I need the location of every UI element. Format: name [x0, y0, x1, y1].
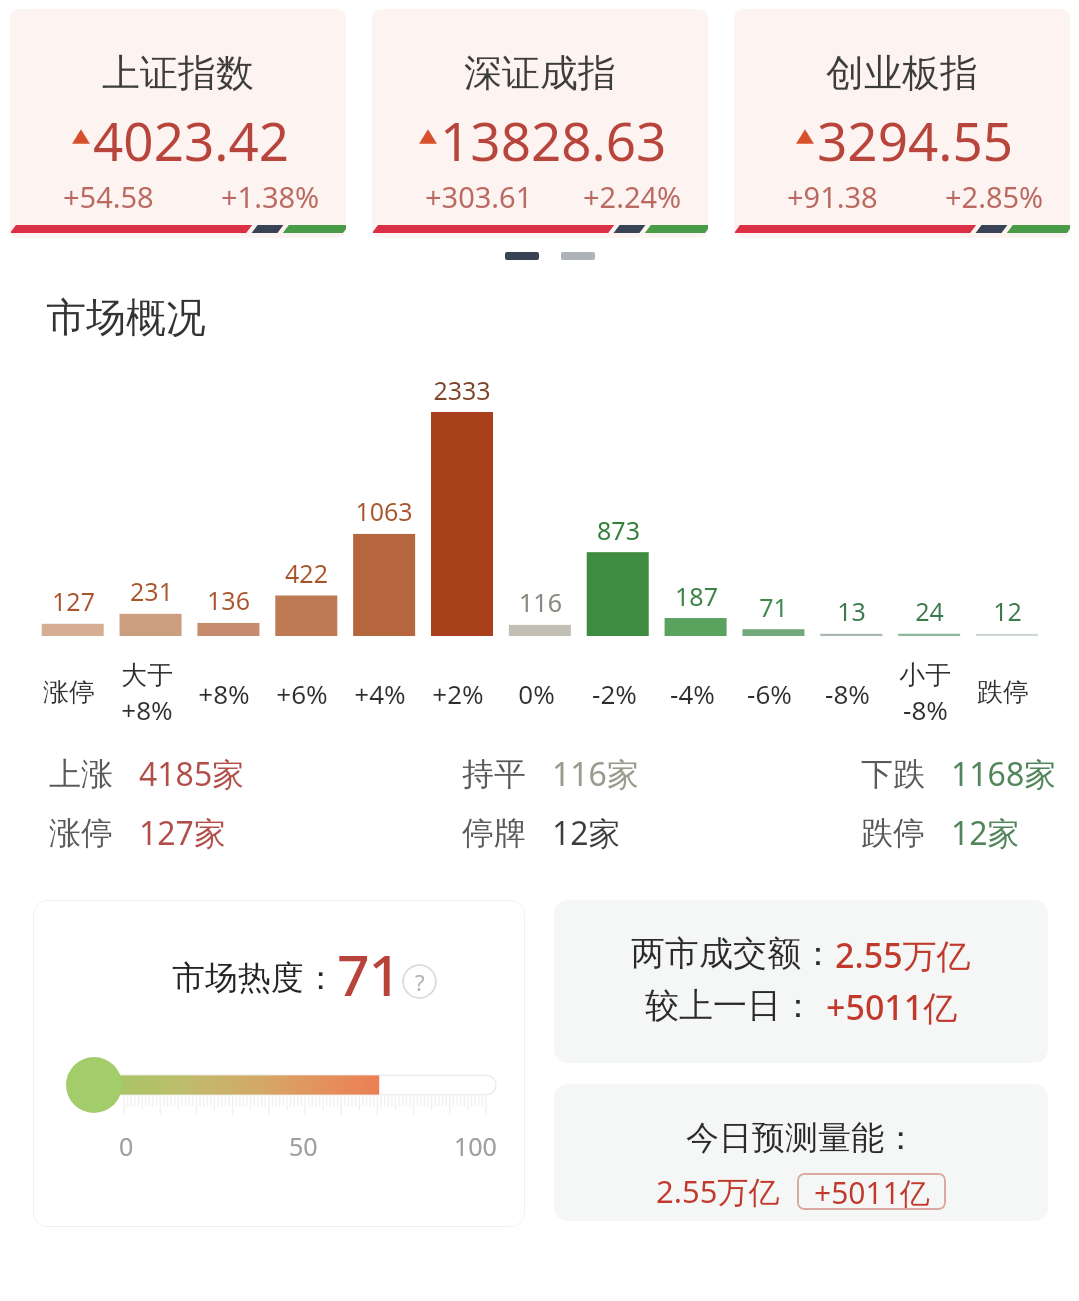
staticText: +2.24%: [583, 177, 682, 216]
staticText: 71: [759, 590, 788, 624]
staticText: 1168家: [951, 752, 1057, 796]
staticText: -2%: [592, 676, 637, 711]
staticText: 持平: [462, 754, 526, 794]
staticText: 深证成指: [464, 49, 616, 97]
button[interactable]: 下跌: [861, 752, 1057, 796]
staticText: 2.55万亿: [835, 932, 971, 978]
staticText: +303.61: [425, 177, 583, 216]
staticText: 231: [130, 574, 173, 608]
staticText: 0%: [518, 676, 555, 711]
staticText: 12家: [552, 811, 621, 855]
staticText: -6%: [747, 676, 792, 711]
button[interactable]: 跌停: [861, 811, 1020, 855]
staticText: 跌停: [977, 676, 1029, 709]
staticText: 两市成交额：: [631, 932, 835, 975]
button[interactable]: 深证成指: [372, 9, 708, 238]
staticText: 2333: [433, 373, 491, 407]
button[interactable]: 两市成交额：: [554, 900, 1048, 1063]
staticText: 3294.55: [817, 104, 1014, 176]
staticText: 0: [119, 1129, 134, 1163]
button[interactable]: 上证指数: [10, 9, 346, 238]
staticText: 市场概况: [46, 292, 206, 342]
button[interactable]: 今日预测量能：: [554, 1084, 1048, 1221]
staticText: +54.58: [63, 177, 221, 216]
staticText: +6%: [276, 676, 328, 711]
staticText: 2.55万亿: [656, 1170, 780, 1212]
staticText: 涨停: [43, 676, 95, 709]
staticText: 116: [519, 585, 562, 619]
staticText: 今日预测量能：: [686, 1117, 917, 1159]
button[interactable]: 上涨: [49, 752, 245, 796]
staticText: +5011亿: [826, 984, 958, 1030]
button[interactable]: 创业板指: [734, 9, 1070, 238]
staticText: ?: [415, 967, 425, 997]
staticText: 4185家: [139, 752, 245, 796]
button[interactable]: 市场热度：: [33, 900, 525, 1227]
staticText: 上证指数: [102, 49, 254, 97]
button[interactable]: 停牌: [462, 811, 621, 855]
staticText: 127家: [139, 811, 226, 855]
staticText: -4%: [670, 676, 715, 711]
staticText: 上涨: [49, 754, 113, 794]
staticText: 50: [289, 1129, 318, 1163]
staticText: -8%: [903, 692, 948, 727]
staticText: 下跌: [861, 754, 925, 794]
staticText: 较上一日：: [645, 984, 815, 1027]
staticText: 跌停: [861, 813, 925, 853]
staticText: 24: [915, 594, 944, 628]
staticText: +4%: [354, 676, 406, 711]
staticText: 4023.42: [93, 104, 290, 176]
staticText: 停牌: [462, 813, 526, 853]
staticText: 873: [597, 513, 640, 547]
button[interactable]: 涨停: [49, 811, 226, 855]
staticText: +2.85%: [945, 177, 1044, 216]
staticText: 187: [675, 579, 718, 613]
button[interactable]: [561, 252, 595, 260]
staticText: +5011亿: [814, 1173, 930, 1209]
staticText: 13828.63: [440, 104, 667, 176]
staticText: +8%: [121, 692, 173, 727]
staticText: 12家: [951, 811, 1020, 855]
staticText: +2%: [432, 676, 484, 711]
button[interactable]: 市场热度说明: [402, 964, 437, 999]
staticText: 422: [285, 556, 328, 590]
staticText: 71: [337, 935, 401, 1013]
staticText: 100: [454, 1129, 497, 1163]
staticText: 市场热度：: [172, 957, 337, 999]
staticText: 小于: [899, 659, 951, 692]
button[interactable]: 持平: [462, 752, 639, 796]
staticText: 116家: [552, 752, 639, 796]
button[interactable]: [505, 252, 539, 260]
staticText: 127: [52, 584, 95, 618]
staticText: -8%: [825, 676, 870, 711]
staticText: +8%: [198, 676, 250, 711]
staticText: 12: [993, 594, 1022, 628]
staticText: 大于: [121, 659, 173, 692]
staticText: +91.38: [787, 177, 945, 216]
staticText: 涨停: [49, 813, 113, 853]
staticText: 创业板指: [826, 49, 978, 97]
staticText: 13: [837, 594, 866, 628]
staticText: 136: [207, 583, 250, 617]
staticText: 1063: [355, 494, 413, 528]
staticText: +1.38%: [221, 177, 320, 216]
